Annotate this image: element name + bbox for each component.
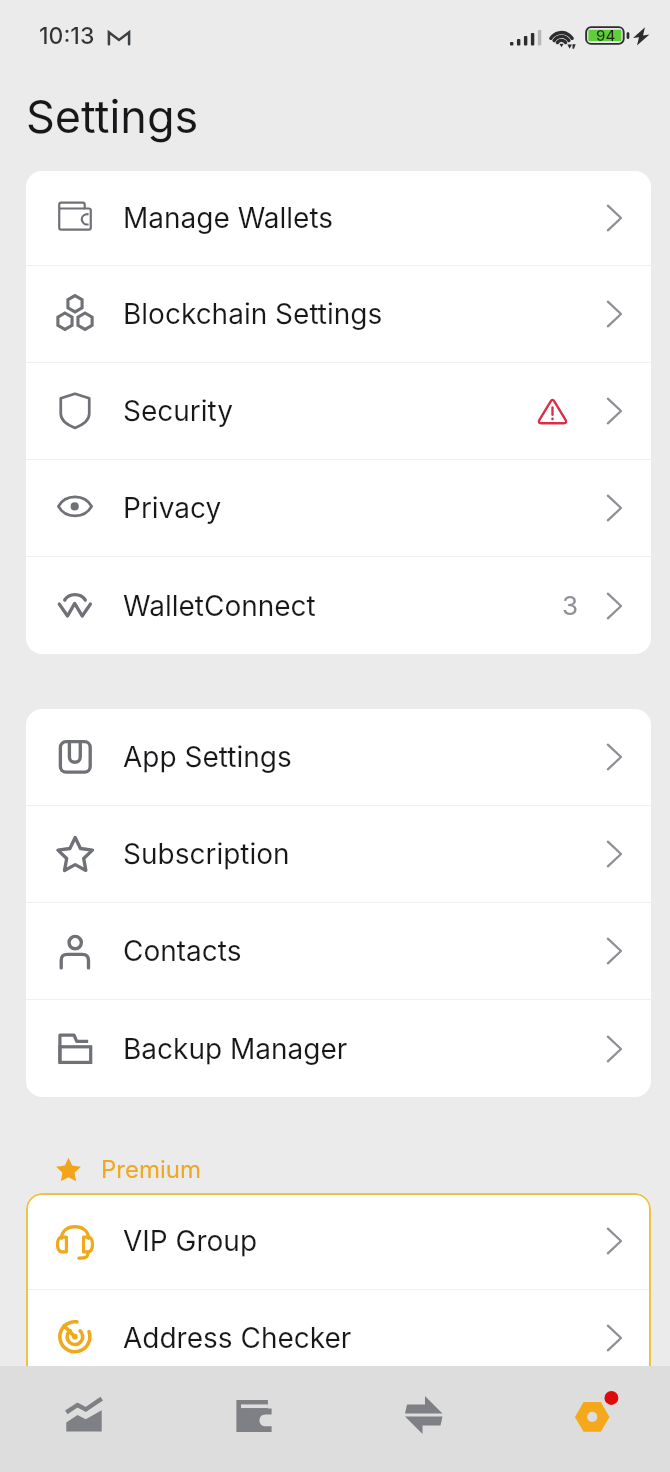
button[interactable]: Privacy: [26, 460, 651, 556]
staticText: Backup Manager: [123, 1032, 348, 1066]
button[interactable]: WalletConnect: [26, 557, 651, 654]
button[interactable]: Manage Wallets: [26, 171, 651, 265]
staticText: Contacts: [123, 934, 242, 968]
button[interactable]: App Settings: [26, 709, 651, 805]
staticText: App Settings: [123, 740, 292, 774]
button[interactable]: Subscription: [26, 806, 651, 902]
button[interactable]: Wallet: [170, 1366, 338, 1472]
button[interactable]: Swap: [340, 1366, 508, 1472]
staticText: 3: [562, 590, 579, 621]
button[interactable]: Contacts: [26, 903, 651, 999]
staticText: 10:13: [39, 22, 95, 50]
button[interactable]: Address Checker: [26, 1290, 651, 1386]
staticText: Blockchain Settings: [123, 297, 383, 331]
staticText: Premium: [101, 1155, 202, 1184]
button[interactable]: Security: [26, 363, 651, 459]
staticText: Settings: [26, 89, 199, 143]
staticText: Address Checker: [123, 1321, 352, 1355]
staticText: 94: [596, 26, 616, 44]
staticText: Manage Wallets: [123, 201, 334, 235]
button[interactable]: Backup Manager: [26, 1000, 651, 1097]
staticText: Security: [123, 394, 234, 428]
button[interactable]: VIP Group: [26, 1193, 651, 1289]
staticText: VIP Group: [123, 1224, 258, 1258]
staticText: WalletConnect: [123, 589, 316, 623]
button[interactable]: Settings: [513, 1366, 670, 1472]
staticText: Subscription: [123, 837, 290, 871]
button[interactable]: Blockchain Settings: [26, 266, 651, 362]
staticText: Privacy: [123, 491, 222, 525]
button[interactable]: Markets: [0, 1366, 168, 1472]
